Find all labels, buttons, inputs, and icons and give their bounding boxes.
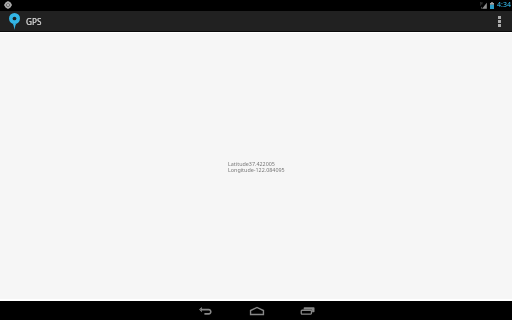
button[interactable]: More options xyxy=(488,11,512,31)
staticText: Latitude37.422005 Longitude-122.084095 xyxy=(228,160,285,173)
button[interactable]: GPS xyxy=(0,11,50,31)
button[interactable]: Back xyxy=(180,301,231,320)
button[interactable]: Recent apps xyxy=(282,301,333,320)
button[interactable]: Home xyxy=(231,301,282,320)
other: Location active xyxy=(4,1,12,9)
other: Mobile signal xyxy=(480,2,487,9)
staticText: 4:34 xyxy=(497,0,511,10)
staticText: GPS xyxy=(26,16,42,27)
